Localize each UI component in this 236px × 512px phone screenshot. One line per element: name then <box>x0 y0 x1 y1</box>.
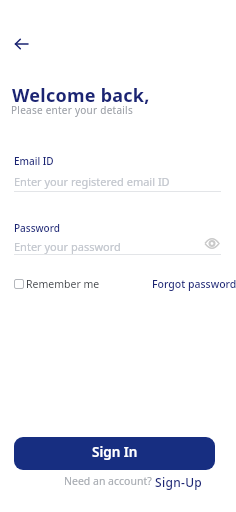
button[interactable]: Sign In <box>14 437 215 470</box>
button[interactable] <box>12 36 30 52</box>
button[interactable]: Forgot password? <box>152 277 236 291</box>
staticText: Sign In <box>92 443 138 461</box>
staticText: Password <box>14 221 60 235</box>
staticText: Enter your registered email ID <box>14 174 170 189</box>
staticText: Remember me <box>26 277 100 291</box>
staticText: Welcome back, <box>12 83 150 108</box>
button[interactable] <box>203 236 220 251</box>
staticText: Need an account? <box>64 474 155 488</box>
staticText: Please enter your details <box>11 103 133 117</box>
staticText: Enter your password <box>14 239 121 254</box>
button[interactable]: Sign-Up <box>155 474 203 490</box>
staticText: Email ID <box>14 154 54 168</box>
button[interactable]: Remember me <box>14 276 100 291</box>
